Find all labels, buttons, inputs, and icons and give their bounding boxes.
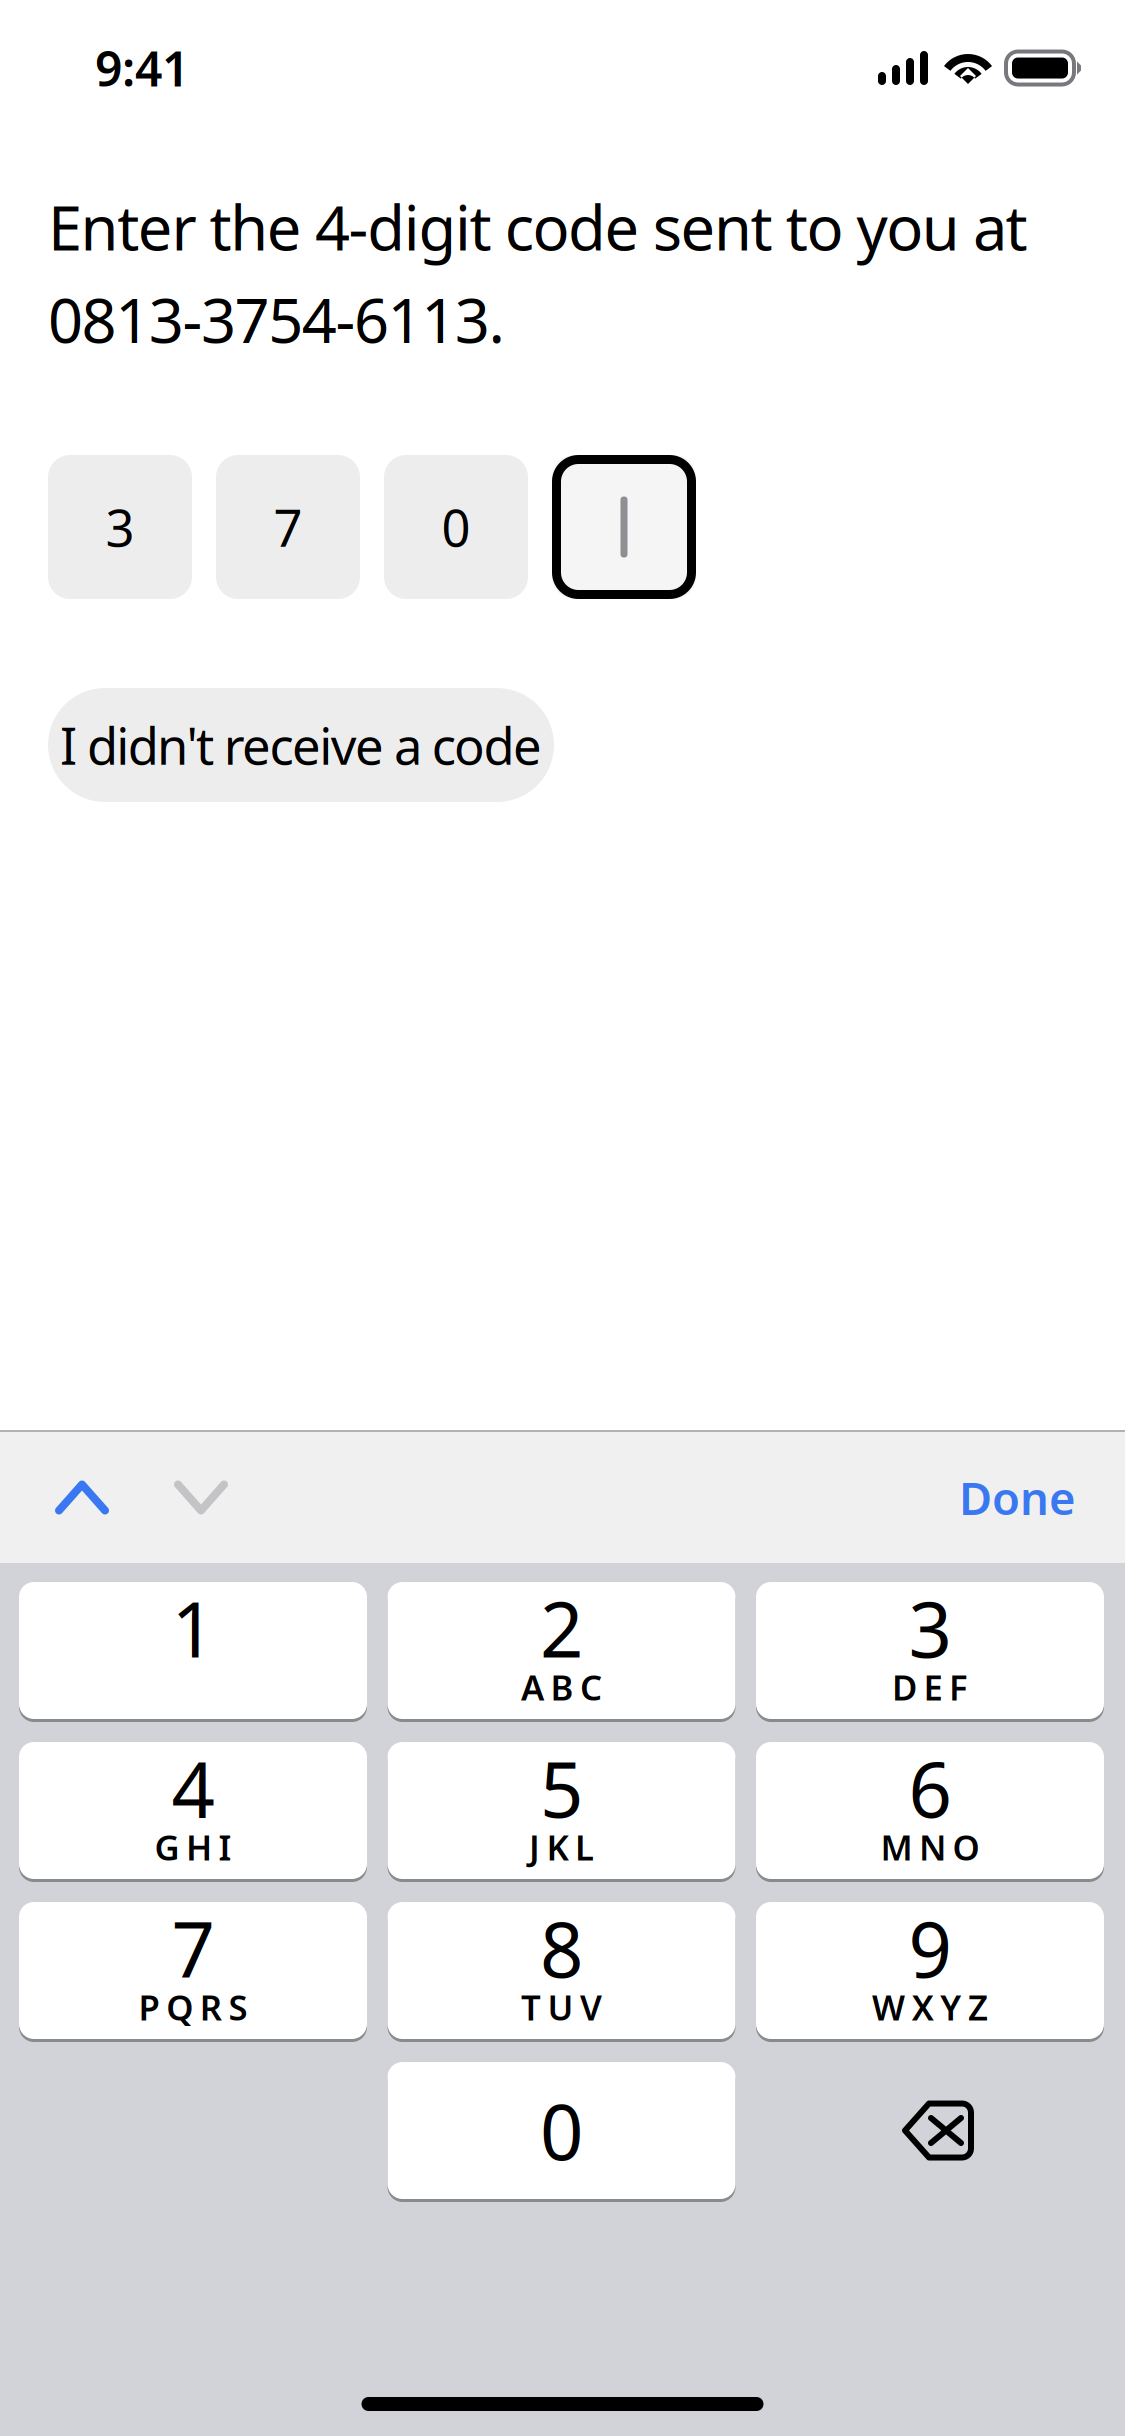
staticText: 7: [273, 493, 302, 561]
staticText: 0: [441, 493, 470, 561]
staticText: 9: [908, 1897, 951, 1998]
staticText: W X Y Z: [872, 1984, 988, 2030]
staticText: 7: [171, 1897, 214, 1998]
staticText: 8: [540, 1897, 583, 1998]
button[interactable]: Done: [856, 1432, 1076, 1563]
button[interactable]: Code digit 7: [216, 455, 360, 599]
button[interactable]: 1: [19, 1582, 367, 1719]
staticText: 4: [171, 1737, 214, 1838]
staticText: 3: [908, 1577, 951, 1678]
staticText: I didn't receive a code: [60, 711, 542, 779]
staticText: 2: [540, 1577, 583, 1678]
button[interactable]: 0: [387, 2062, 735, 2199]
button[interactable]: Delete: [764, 2062, 1112, 2199]
button[interactable]: 6: [756, 1742, 1104, 1879]
staticText: 9:41: [95, 36, 189, 100]
staticText: 5: [540, 1737, 583, 1838]
button[interactable]: 8: [387, 1902, 735, 2039]
button[interactable]: 3: [756, 1582, 1104, 1719]
staticText: G H I: [154, 1824, 232, 1870]
button[interactable]: Next field: [142, 1432, 260, 1563]
staticText: D E F: [892, 1664, 968, 1710]
staticText: 6: [908, 1737, 951, 1838]
button[interactable]: Previous field: [23, 1432, 141, 1563]
staticText: 0: [540, 2080, 583, 2181]
button[interactable]: 2: [387, 1582, 735, 1719]
button[interactable]: 9: [756, 1902, 1104, 2039]
button[interactable]: I didn't receive a code: [48, 688, 554, 802]
staticText: M N O: [880, 1824, 980, 1870]
staticText: T U V: [521, 1984, 602, 2030]
staticText: 1: [171, 1577, 214, 1678]
staticText: J K L: [529, 1824, 594, 1870]
staticText: Enter the 4-digit code sent to you at 08…: [48, 186, 1028, 360]
staticText: Done: [959, 1467, 1076, 1528]
staticText: A B C: [521, 1664, 602, 1710]
button[interactable]: 5: [387, 1742, 735, 1879]
button[interactable]: Code digit 3: [48, 455, 192, 599]
staticText: 3: [105, 493, 134, 561]
button[interactable]: Code digit 0: [384, 455, 528, 599]
button[interactable]: 4: [19, 1742, 367, 1879]
button[interactable]: Code digit 4: [552, 455, 696, 599]
staticText: P Q R S: [139, 1984, 247, 2030]
button[interactable]: 7: [19, 1902, 367, 2039]
